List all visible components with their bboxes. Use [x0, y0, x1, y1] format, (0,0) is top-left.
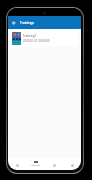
staticText: 2020-01-01 00:00:00	[23, 39, 50, 43]
button[interactable]: Training1	[10, 30, 79, 47]
button[interactable]: Stats	[45, 157, 63, 170]
staticText: Training1	[23, 34, 37, 38]
button[interactable]: Home	[8, 157, 27, 170]
button[interactable]: Profile	[63, 157, 81, 170]
button[interactable]: Trainings	[27, 157, 45, 170]
staticText: Trainings	[20, 21, 34, 25]
button[interactable]: Back	[8, 16, 19, 29]
staticText: Trainings	[31, 164, 41, 167]
